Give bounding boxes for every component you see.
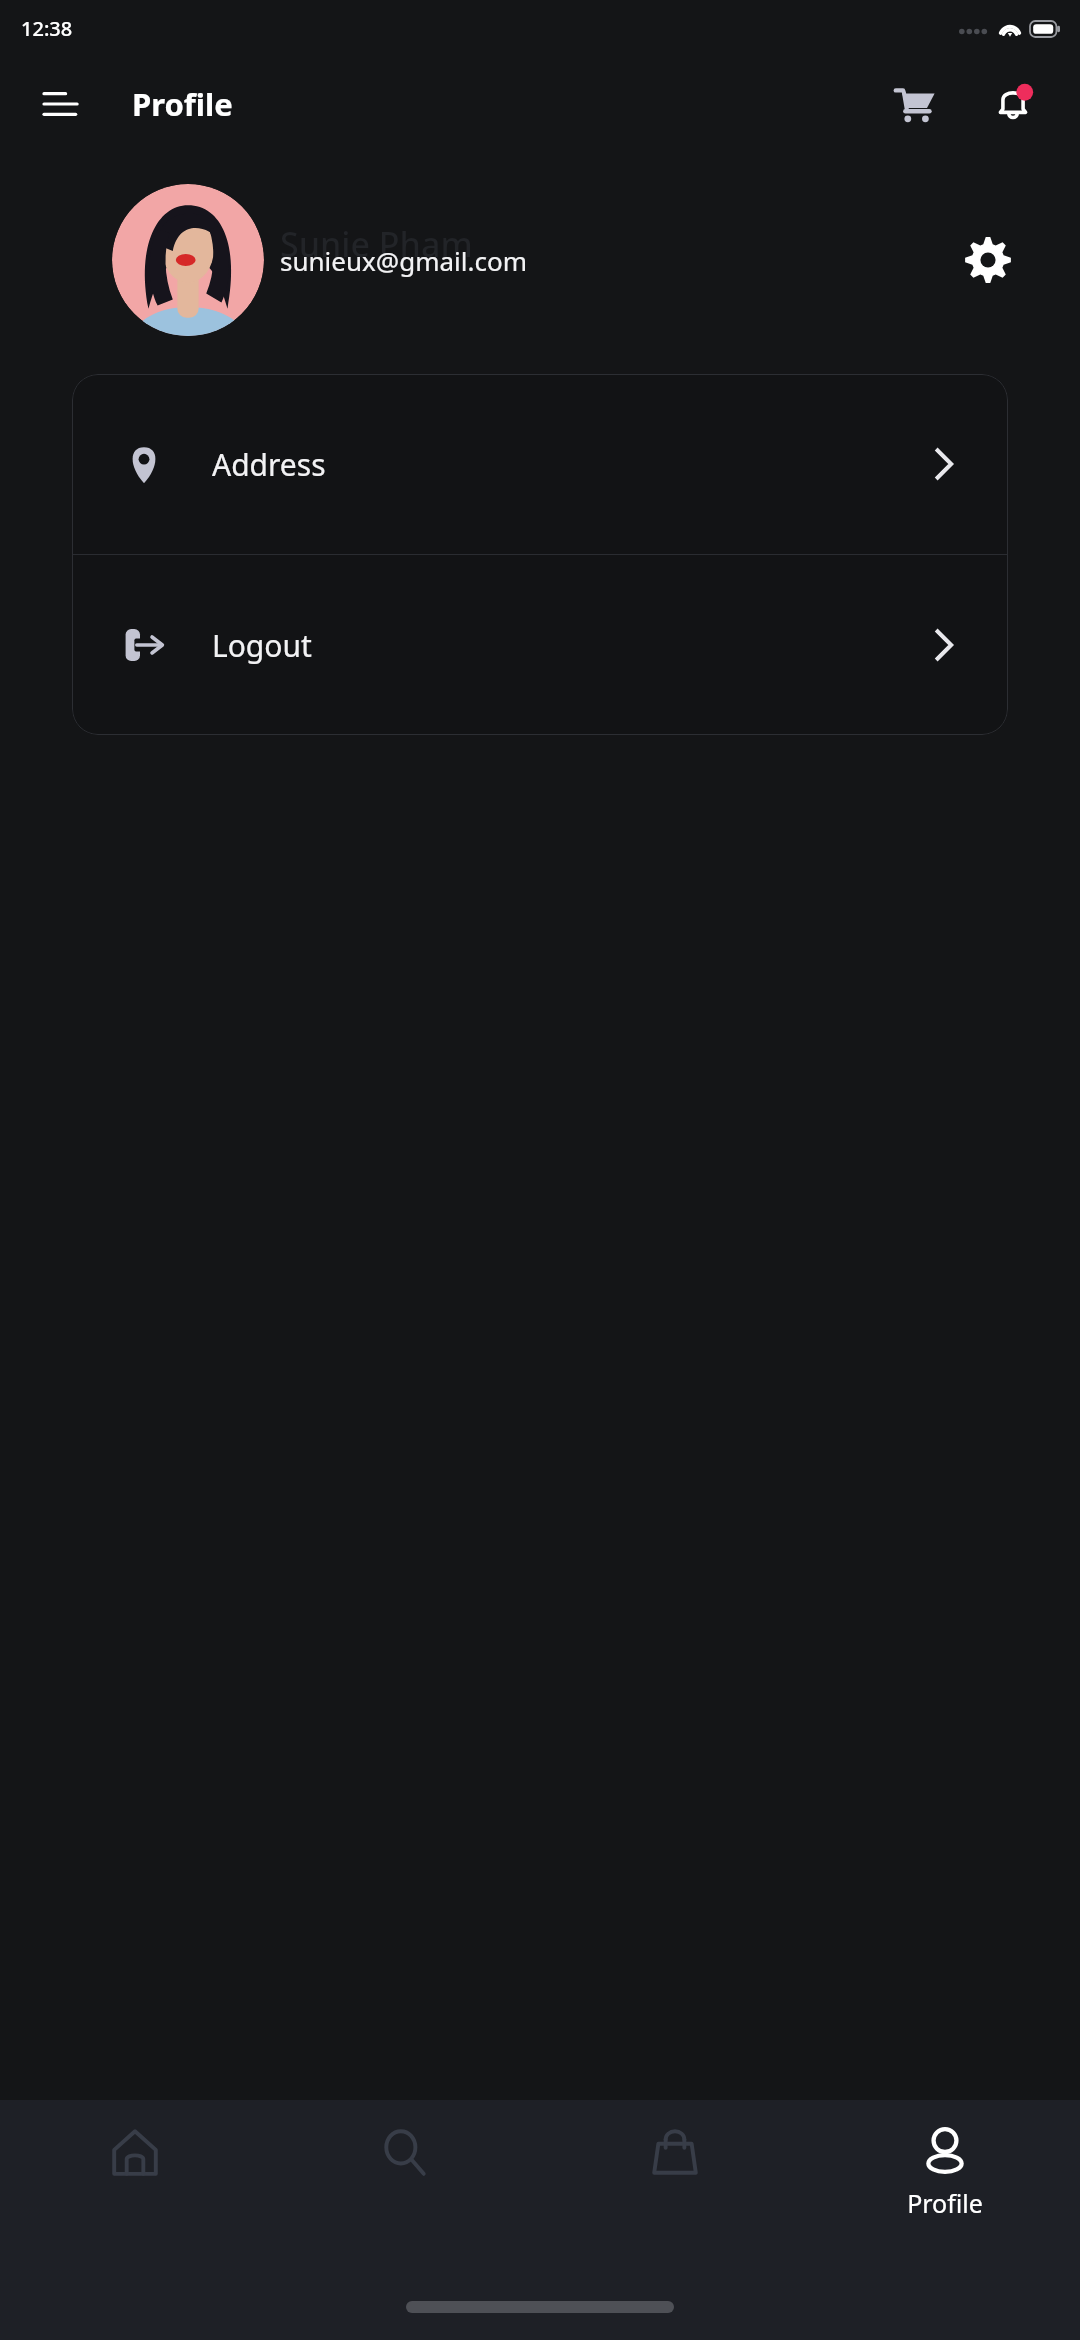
button[interactable]: Address: [72, 374, 1008, 554]
button[interactable]: Menu: [38, 80, 86, 128]
staticText: Address: [212, 444, 934, 485]
staticText: Sunie Pham: [280, 221, 473, 267]
button[interactable]: Notifications: [984, 75, 1042, 133]
staticText: sunieux@gmail.com: [280, 243, 527, 278]
button[interactable]: Cart: [886, 75, 944, 133]
button[interactable]: Settings: [956, 228, 1020, 292]
staticText: Profile: [132, 83, 233, 125]
button[interactable]: Tab: [540, 2100, 810, 2178]
button[interactable]: Tab: [0, 2100, 270, 2178]
staticText: Logout: [212, 625, 934, 666]
button[interactable]: Sunie Pham: [0, 180, 1080, 340]
button[interactable]: Logout: [72, 555, 1008, 735]
button[interactable]: Tab: [270, 2100, 540, 2178]
staticText: 12:38: [21, 15, 73, 42]
staticText: Profile: [907, 2186, 983, 2220]
button[interactable]: Profile: [810, 2100, 1080, 2220]
